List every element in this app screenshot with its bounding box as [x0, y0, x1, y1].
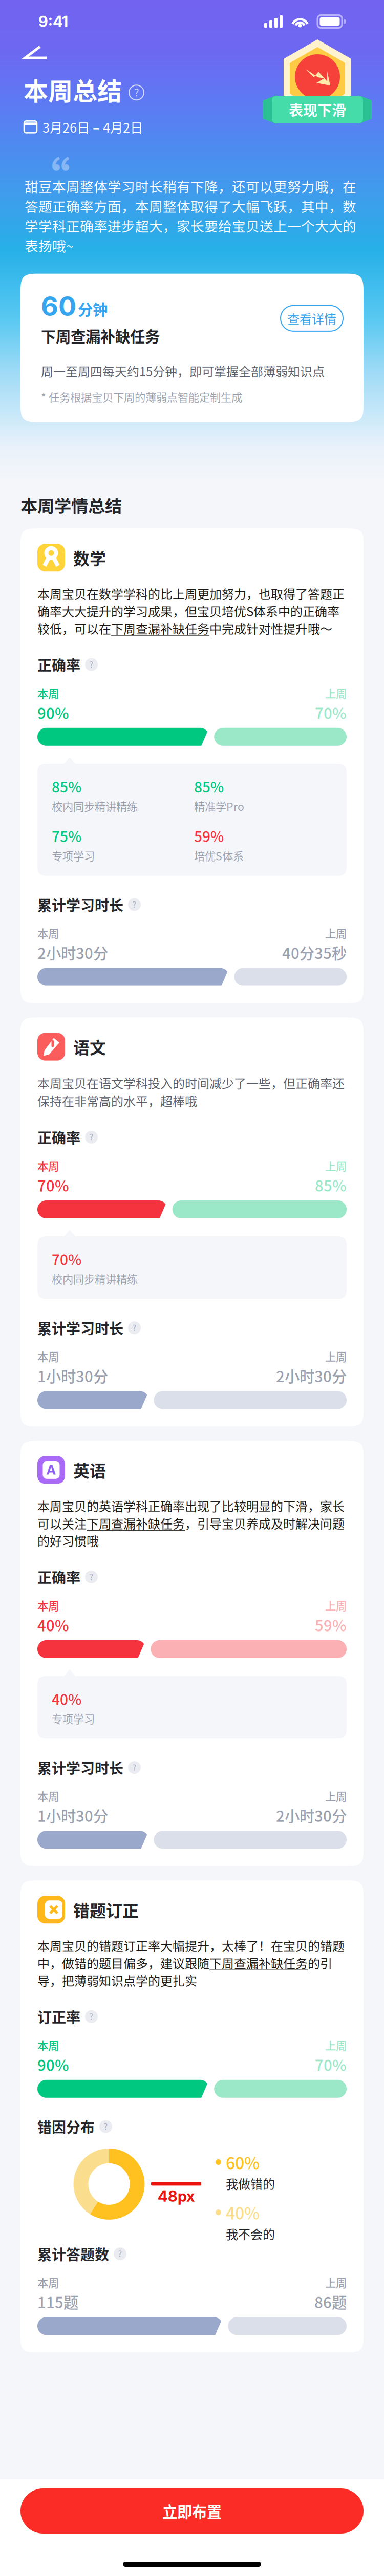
- staticText: 错因分布: [37, 2116, 95, 2137]
- staticText: 40%: [52, 1688, 81, 1709]
- staticText: 本周: [37, 1788, 59, 1804]
- staticText: 校内同步精讲精练: [52, 798, 138, 814]
- staticText: 70%: [37, 1174, 69, 1196]
- staticText: 2小时30分: [37, 941, 108, 963]
- staticText: 我不会的: [226, 2225, 275, 2243]
- staticText: 本周: [37, 1598, 59, 1613]
- staticText: 上周: [325, 2274, 347, 2290]
- staticText: 正确率: [37, 1127, 80, 1148]
- staticText: 专项学习: [52, 848, 95, 863]
- staticText: 累计答题数: [37, 2243, 109, 2264]
- staticText: 40%: [37, 1614, 69, 1636]
- staticText: 3月26日 – 4月2日: [42, 117, 143, 136]
- staticText: 1小时30分: [37, 1365, 108, 1386]
- staticText: A: [46, 1462, 56, 1478]
- staticText: 精准学Pro: [194, 798, 244, 814]
- staticText: 70%: [315, 702, 347, 723]
- staticText: 9:41: [38, 12, 68, 31]
- staticText: 48px: [158, 2187, 195, 2205]
- staticText: 下周查漏补缺任务: [41, 325, 160, 347]
- staticText: 本周总结: [24, 72, 122, 107]
- staticText: 本周宝贝的错题订正率大幅提升，太棒了！在宝贝的错题中，做错的题目偏多，建议跟随下…: [37, 1937, 345, 1989]
- button[interactable]: 返回: [15, 39, 56, 66]
- staticText: 错题订正: [73, 1898, 139, 1921]
- staticText: 85%: [52, 776, 81, 797]
- button[interactable]: 查看详情: [281, 306, 343, 331]
- staticText: 本周宝贝在语文学科投入的时间减少了一些，但正确率还保持在非常高的水平，超棒哦: [37, 1074, 345, 1109]
- staticText: 40%: [226, 2201, 260, 2224]
- staticText: 正确率: [37, 1566, 80, 1587]
- staticText: 40分35秒: [282, 941, 347, 963]
- staticText: 英语: [73, 1458, 106, 1482]
- staticText: 85%: [315, 1174, 347, 1196]
- staticText: 本周: [37, 1348, 59, 1364]
- staticText: 校内同步精讲精练: [52, 1271, 138, 1287]
- staticText: ?: [104, 2120, 108, 2132]
- staticText: 86题: [314, 2291, 347, 2313]
- staticText: 上周: [325, 685, 347, 701]
- staticText: 数学: [73, 546, 106, 569]
- staticText: ?: [89, 658, 93, 670]
- button[interactable]: 立即布置: [20, 2488, 364, 2534]
- staticText: 上周: [325, 1348, 347, 1364]
- staticText: 正确率: [37, 654, 80, 675]
- staticText: 上周: [325, 1788, 347, 1804]
- staticText: ?: [134, 85, 139, 99]
- staticText: 上周: [325, 1158, 347, 1174]
- staticText: 70%: [52, 1249, 81, 1269]
- staticText: * 任务根据宝贝下周的薄弱点智能定制生成: [41, 389, 242, 405]
- staticText: 查看详情: [287, 309, 336, 327]
- staticText: 立即布置: [162, 2500, 222, 2522]
- staticText: 表现下滑: [289, 99, 346, 120]
- staticText: 累计学习时长: [37, 1317, 123, 1338]
- staticText: 70%: [315, 2054, 347, 2075]
- staticText: 85%: [194, 776, 224, 797]
- staticText: 115题: [37, 2291, 78, 2313]
- staticText: 累计学习时长: [37, 894, 123, 915]
- staticText: ?: [132, 1321, 136, 1333]
- staticText: ?: [132, 1761, 136, 1773]
- staticText: 本周: [37, 2037, 59, 2053]
- staticText: ?: [89, 2010, 93, 2022]
- staticText: ?: [89, 1570, 93, 1582]
- staticText: 90%: [37, 702, 69, 723]
- staticText: 75%: [52, 825, 81, 846]
- staticText: 本周: [37, 685, 59, 701]
- staticText: 2小时30分: [276, 1365, 347, 1386]
- staticText: 59%: [194, 825, 224, 846]
- staticText: 本周学情总结: [20, 492, 122, 517]
- staticText: ?: [132, 898, 136, 910]
- staticText: 本周: [37, 2274, 59, 2290]
- staticText: 本周宝贝的英语学科正确率出现了比较明显的下滑，家长可以关注下周查漏补缺任务，引导…: [37, 1497, 345, 1549]
- staticText: 60%: [226, 2150, 260, 2174]
- staticText: 本周: [37, 1158, 59, 1174]
- staticText: 语文: [73, 1035, 106, 1059]
- staticText: 本周: [37, 925, 59, 941]
- staticText: 我做错的: [226, 2174, 275, 2192]
- staticText: 1小时30分: [37, 1804, 108, 1826]
- staticText: 59%: [315, 1614, 347, 1636]
- staticText: 分钟: [78, 298, 108, 320]
- staticText: ?: [89, 1131, 93, 1143]
- staticText: 上周: [325, 925, 347, 941]
- staticText: ?: [118, 2247, 122, 2259]
- staticText: 本周宝贝在数学学科的比上周更加努力，也取得了答题正确率大大提升的学习成果，但宝贝…: [37, 585, 345, 637]
- staticText: 90%: [37, 2054, 69, 2075]
- staticText: 培优S体系: [194, 848, 244, 863]
- staticText: “: [25, 143, 70, 210]
- staticText: 周一至周四每天约15分钟，即可掌握全部薄弱知识点: [41, 362, 325, 380]
- staticText: 上周: [325, 2037, 347, 2053]
- staticText: 2小时30分: [276, 1804, 347, 1826]
- staticText: 订正率: [37, 2006, 80, 2027]
- staticText: 60: [41, 290, 76, 322]
- staticText: 上周: [325, 1598, 347, 1613]
- staticText: 甜豆本周整体学习时长稍有下降，还可以更努力哦，在答题正确率方面，本周整体取得了大…: [25, 176, 356, 255]
- staticText: 专项学习: [52, 1711, 95, 1726]
- staticText: 累计学习时长: [37, 1757, 123, 1778]
